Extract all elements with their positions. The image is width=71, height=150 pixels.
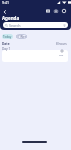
button[interactable] xyxy=(2,50,68,62)
staticText: Date xyxy=(2,42,10,46)
staticText: 9:41 xyxy=(2,0,9,5)
button[interactable]: Settings xyxy=(61,8,67,14)
button[interactable]: Card view xyxy=(45,8,51,14)
staticText: 8 hours xyxy=(56,42,67,46)
staticText: Day 1 xyxy=(2,47,11,51)
button[interactable]: Search xyxy=(3,22,68,28)
staticText: Search xyxy=(9,23,21,28)
staticText: add xyxy=(59,53,64,56)
staticText: Agenda xyxy=(2,15,20,21)
button[interactable]: Today xyxy=(2,34,13,39)
button[interactable]: 07 Wed xyxy=(16,34,27,39)
button[interactable]: Bookings xyxy=(53,8,59,14)
staticText: Today xyxy=(3,35,12,39)
button[interactable]: Back xyxy=(1,8,8,15)
staticText: 07 Wed xyxy=(16,35,27,39)
